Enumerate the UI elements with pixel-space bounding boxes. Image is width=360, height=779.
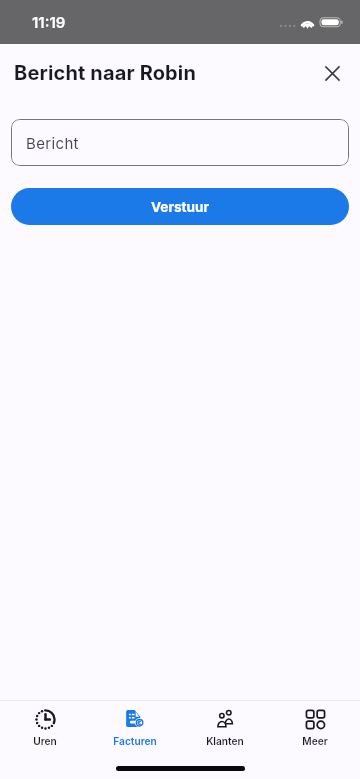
- staticText: Bericht naar Robin: [14, 61, 197, 85]
- button[interactable]: Uren: [0, 701, 90, 749]
- button[interactable]: Klanten: [180, 701, 270, 749]
- staticText: Bericht: [26, 134, 79, 152]
- staticText: Meer: [302, 735, 328, 747]
- button[interactable]: Meer: [270, 701, 360, 749]
- button[interactable]: Facturen: [90, 701, 180, 749]
- staticText: Facturen: [113, 735, 157, 747]
- button[interactable]: Verstuur: [11, 188, 349, 225]
- staticText: Uren: [33, 735, 57, 747]
- staticText: 11:19: [32, 13, 66, 31]
- button[interactable]: Bericht: [11, 119, 349, 166]
- button[interactable]: Sluiten: [312, 53, 352, 93]
- staticText: Klanten: [206, 735, 244, 747]
- staticText: Verstuur: [151, 199, 210, 215]
